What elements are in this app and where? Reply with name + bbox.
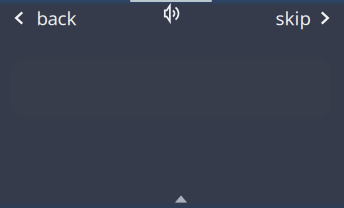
button[interactable]: back [15, 5, 95, 31]
button[interactable]: Scroll up [174, 195, 187, 203]
button[interactable]: skip [249, 5, 329, 31]
staticText: skip [276, 6, 311, 30]
button[interactable]: Audio [163, 4, 180, 23]
staticText: back [36, 6, 76, 30]
